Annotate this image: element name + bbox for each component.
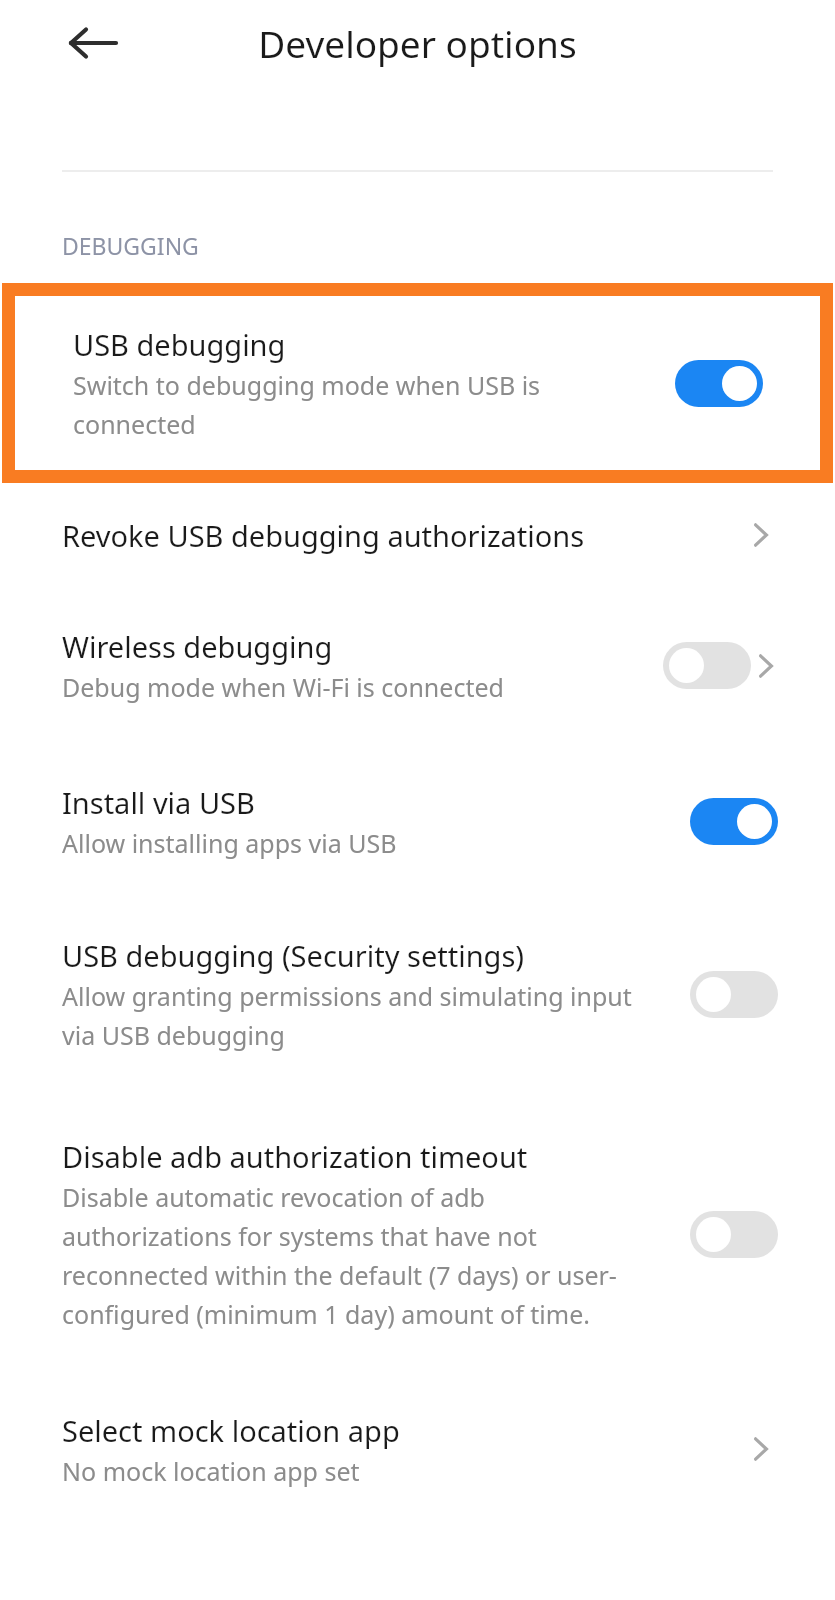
staticText: DEBUGGING <box>62 230 199 261</box>
staticText: Wireless debugging <box>62 627 333 666</box>
staticText: USB debugging (Security settings) <box>62 936 524 975</box>
button[interactable]: Toggle off <box>690 1211 778 1258</box>
staticText: Select mock location app <box>62 1411 400 1450</box>
staticText: Install via USB <box>62 783 255 822</box>
button[interactable]: Back <box>58 8 128 78</box>
button[interactable]: Toggle on <box>675 360 763 407</box>
button[interactable]: USB debugging (Security settings) <box>0 899 835 1089</box>
staticText: Debug mode when Wi-Fi is connected <box>62 670 504 704</box>
button[interactable]: Toggle on <box>690 798 778 845</box>
button[interactable]: Select mock location app <box>0 1379 835 1519</box>
button[interactable]: Disable adb authorization timeout <box>0 1089 835 1379</box>
staticText: Developer options <box>258 18 577 68</box>
button[interactable]: Toggle off <box>690 971 778 1018</box>
button[interactable]: Wireless debugging <box>0 587 835 744</box>
staticText: Allow installing apps via USB <box>62 826 397 860</box>
staticText: No mock location app set <box>62 1454 360 1488</box>
button[interactable]: USB debugging <box>15 296 820 470</box>
staticText: Disable adb authorization timeout <box>62 1137 528 1176</box>
staticText: Revoke USB debugging authorizations <box>62 516 585 555</box>
button[interactable]: Toggle off <box>663 642 751 689</box>
staticText: Disable automatic revocation of adb auth… <box>62 1180 625 1331</box>
button[interactable]: Revoke USB debugging authorizations <box>0 483 835 587</box>
staticText: Allow granting permissions and simulatin… <box>62 979 635 1052</box>
staticText: USB debugging <box>73 325 286 364</box>
staticText: Switch to debugging mode when USB is con… <box>73 368 620 441</box>
button[interactable]: Install via USB <box>0 744 835 899</box>
